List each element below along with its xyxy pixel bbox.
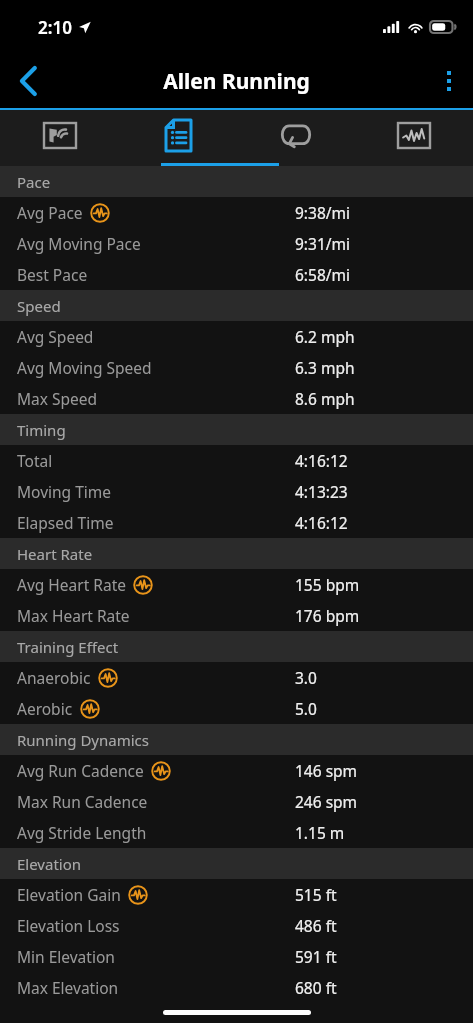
staticText: Training Effect	[17, 637, 119, 657]
staticText: 486 ft	[295, 915, 337, 936]
staticText: Speed	[17, 296, 61, 316]
button[interactable]: Avg Moving Pace	[0, 228, 473, 259]
staticText: Allen Running	[163, 67, 310, 96]
staticText: 4:13:23	[295, 481, 348, 502]
staticText: 146 spm	[295, 760, 358, 781]
staticText: 9:31/mi	[295, 233, 351, 254]
button[interactable]: Elevation Loss	[0, 910, 473, 941]
staticText: 6.2 mph	[295, 326, 355, 347]
button[interactable]: Max Elevation	[0, 972, 473, 1003]
staticText: Timing	[17, 420, 66, 440]
button[interactable]: Back	[0, 54, 56, 108]
button[interactable]: Max Speed	[0, 383, 473, 414]
button[interactable]: Elevation Gain	[0, 879, 473, 910]
button[interactable]: Elapsed Time	[0, 507, 473, 538]
staticText: Heart Rate	[17, 544, 93, 564]
staticText: Running Dynamics	[17, 730, 149, 750]
staticText: Moving Time	[17, 481, 111, 502]
button[interactable]: More options	[425, 54, 473, 108]
staticText: Avg Stride Length	[17, 822, 147, 843]
button[interactable]: Details	[119, 110, 237, 166]
staticText: 8.6 mph	[295, 388, 355, 409]
staticText: Aerobic	[17, 698, 73, 719]
staticText: 6:58/mi	[295, 264, 351, 285]
button[interactable]: Avg Run Cadence	[0, 755, 473, 786]
staticText: 4:16:12	[295, 450, 348, 471]
staticText: 4:16:12	[295, 512, 348, 533]
staticText: Elevation Gain	[17, 884, 121, 905]
button[interactable]: Avg Heart Rate	[0, 569, 473, 600]
staticText: Min Elevation	[17, 946, 115, 967]
staticText: 9:38/mi	[295, 202, 351, 223]
staticText: Avg Run Cadence	[17, 760, 144, 781]
button[interactable]: Avg Speed	[0, 321, 473, 352]
staticText: 5.0	[295, 698, 317, 719]
staticText: Max Run Cadence	[17, 791, 148, 812]
staticText: 2:10	[38, 16, 72, 39]
button[interactable]: Avg Moving Speed	[0, 352, 473, 383]
button[interactable]: Min Elevation	[0, 941, 473, 972]
staticText: Pace	[17, 172, 51, 192]
button[interactable]: Charts	[355, 110, 473, 166]
button[interactable]: Best Pace	[0, 259, 473, 290]
staticText: Max Heart Rate	[17, 605, 130, 626]
staticText: 3.0	[295, 667, 317, 688]
staticText: Anaerobic	[17, 667, 91, 688]
button[interactable]: Laps	[237, 110, 355, 166]
staticText: Elevation Loss	[17, 915, 120, 936]
staticText: Avg Moving Pace	[17, 233, 141, 254]
staticText: Max Speed	[17, 388, 98, 409]
staticText: Avg Heart Rate	[17, 574, 126, 595]
staticText: 1.15 m	[295, 822, 345, 843]
button[interactable]: Avg Pace	[0, 197, 473, 228]
button[interactable]: Map	[0, 110, 119, 166]
staticText: Avg Pace	[17, 202, 83, 223]
staticText: 246 spm	[295, 791, 358, 812]
staticText: 680 ft	[295, 977, 337, 998]
staticText: Avg Moving Speed	[17, 357, 152, 378]
staticText: 155 bpm	[295, 574, 360, 595]
button[interactable]: Moving Time	[0, 476, 473, 507]
staticText: 6.3 mph	[295, 357, 355, 378]
button[interactable]: Max Heart Rate	[0, 600, 473, 631]
button[interactable]: Anaerobic	[0, 662, 473, 693]
staticText: Total	[17, 450, 53, 471]
staticText: 515 ft	[295, 884, 337, 905]
staticText: Best Pace	[17, 264, 88, 285]
button[interactable]: Avg Stride Length	[0, 817, 473, 848]
button[interactable]: Aerobic	[0, 693, 473, 724]
button[interactable]: Max Run Cadence	[0, 786, 473, 817]
staticText: Max Elevation	[17, 977, 119, 998]
staticText: 591 ft	[295, 946, 337, 967]
button[interactable]: Total	[0, 445, 473, 476]
staticText: Avg Speed	[17, 326, 94, 347]
staticText: Elapsed Time	[17, 512, 114, 533]
staticText: 176 bpm	[295, 605, 360, 626]
staticText: Elevation	[17, 854, 82, 874]
